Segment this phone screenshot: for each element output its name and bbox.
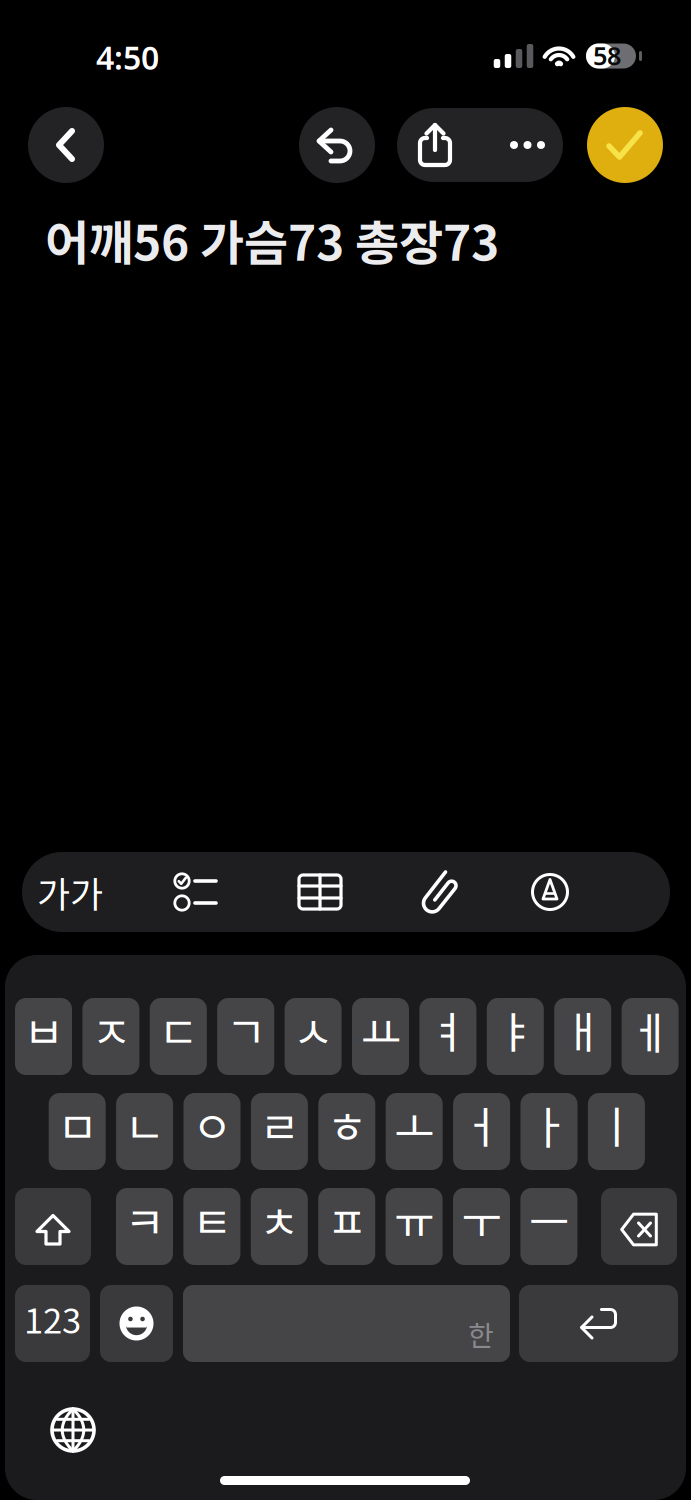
staticText: 4:50: [96, 36, 159, 78]
staticText: 한: [468, 1313, 494, 1354]
button[interactable]: ㅍ: [318, 1188, 375, 1265]
button[interactable]: ㅣ: [588, 1093, 645, 1170]
staticText: ㅔ: [630, 998, 670, 1061]
button[interactable]: Table: [272, 852, 368, 932]
button[interactable]: 123: [15, 1285, 90, 1362]
staticText: ㅅ: [293, 998, 333, 1061]
staticText: ㄴ: [125, 1093, 165, 1156]
staticText: 어깨56 가슴73 총장73: [45, 205, 499, 274]
button[interactable]: Back: [28, 107, 104, 183]
button[interactable]: ㅓ: [453, 1093, 510, 1170]
staticText: ㅋ: [124, 1188, 164, 1251]
staticText: 58: [593, 39, 621, 72]
staticText: ㅂ: [23, 998, 63, 1061]
button[interactable]: ㅡ: [520, 1188, 577, 1265]
staticText: ㅇ: [192, 1093, 232, 1156]
button[interactable]: ㄷ: [150, 998, 207, 1075]
button[interactable]: Return: [519, 1285, 678, 1362]
button[interactable]: ㄹ: [251, 1093, 308, 1170]
button[interactable]: ㅅ: [285, 998, 342, 1075]
button[interactable]: ㅐ: [554, 998, 611, 1075]
button[interactable]: ㄱ: [217, 998, 274, 1075]
button[interactable]: ㅛ: [352, 998, 409, 1075]
staticText: 123: [24, 1293, 81, 1344]
button[interactable]: Format: [22, 852, 118, 932]
staticText: ㅈ: [91, 998, 131, 1061]
staticText: ㅓ: [462, 1093, 502, 1156]
button[interactable]: ㅑ: [487, 998, 544, 1075]
button[interactable]: ㅌ: [183, 1188, 240, 1265]
button[interactable]: Markup: [502, 852, 598, 932]
button[interactable]: ㅁ: [49, 1093, 106, 1170]
staticText: ㅁ: [57, 1093, 97, 1156]
staticText: ㅏ: [529, 1093, 569, 1156]
button[interactable]: Checklist: [148, 852, 244, 932]
button[interactable]: Attach: [392, 852, 488, 932]
button[interactable]: Shift: [15, 1188, 91, 1265]
button[interactable]: Emoji: [100, 1285, 173, 1362]
staticText: ㅛ: [360, 998, 400, 1061]
staticText: ㅎ: [327, 1093, 367, 1156]
staticText: 가가: [37, 866, 103, 918]
button[interactable]: ㄴ: [116, 1093, 173, 1170]
button[interactable]: Done: [587, 107, 663, 183]
staticText: ㅊ: [259, 1188, 299, 1251]
staticText: ㅗ: [394, 1093, 434, 1156]
button[interactable]: ㅈ: [82, 998, 139, 1075]
staticText: ㅌ: [192, 1188, 232, 1251]
button[interactable]: ㅠ: [386, 1188, 443, 1265]
staticText: ㄹ: [259, 1093, 299, 1156]
staticText: ㅜ: [461, 1188, 501, 1251]
button[interactable]: ㅕ: [419, 998, 476, 1075]
staticText: ㄷ: [158, 998, 198, 1061]
button[interactable]: ㅇ: [183, 1093, 240, 1170]
button[interactable]: ㅂ: [15, 998, 72, 1075]
staticText: ㅠ: [394, 1188, 434, 1251]
button[interactable]: ㅊ: [251, 1188, 308, 1265]
staticText: ㅣ: [596, 1093, 636, 1156]
staticText: ㅐ: [563, 998, 603, 1061]
staticText: ㅕ: [428, 998, 468, 1061]
button[interactable]: ㅏ: [520, 1093, 577, 1170]
staticText: ㄱ: [226, 998, 266, 1061]
button[interactable]: ㅋ: [116, 1188, 173, 1265]
button[interactable]: Delete: [601, 1188, 677, 1265]
button[interactable]: Space: [183, 1285, 510, 1362]
button[interactable]: ㅗ: [386, 1093, 443, 1170]
button[interactable]: Share: [396, 108, 474, 182]
button[interactable]: ㅔ: [622, 998, 679, 1075]
button[interactable]: ㅜ: [453, 1188, 510, 1265]
staticText: ㅡ: [529, 1188, 569, 1251]
button[interactable]: Undo: [299, 107, 375, 183]
button[interactable]: More: [488, 108, 567, 182]
staticText: ㅍ: [327, 1188, 367, 1251]
staticText: ㅑ: [495, 998, 535, 1061]
button[interactable]: ㅎ: [318, 1093, 375, 1170]
button[interactable]: Next keyboard: [41, 1398, 105, 1462]
